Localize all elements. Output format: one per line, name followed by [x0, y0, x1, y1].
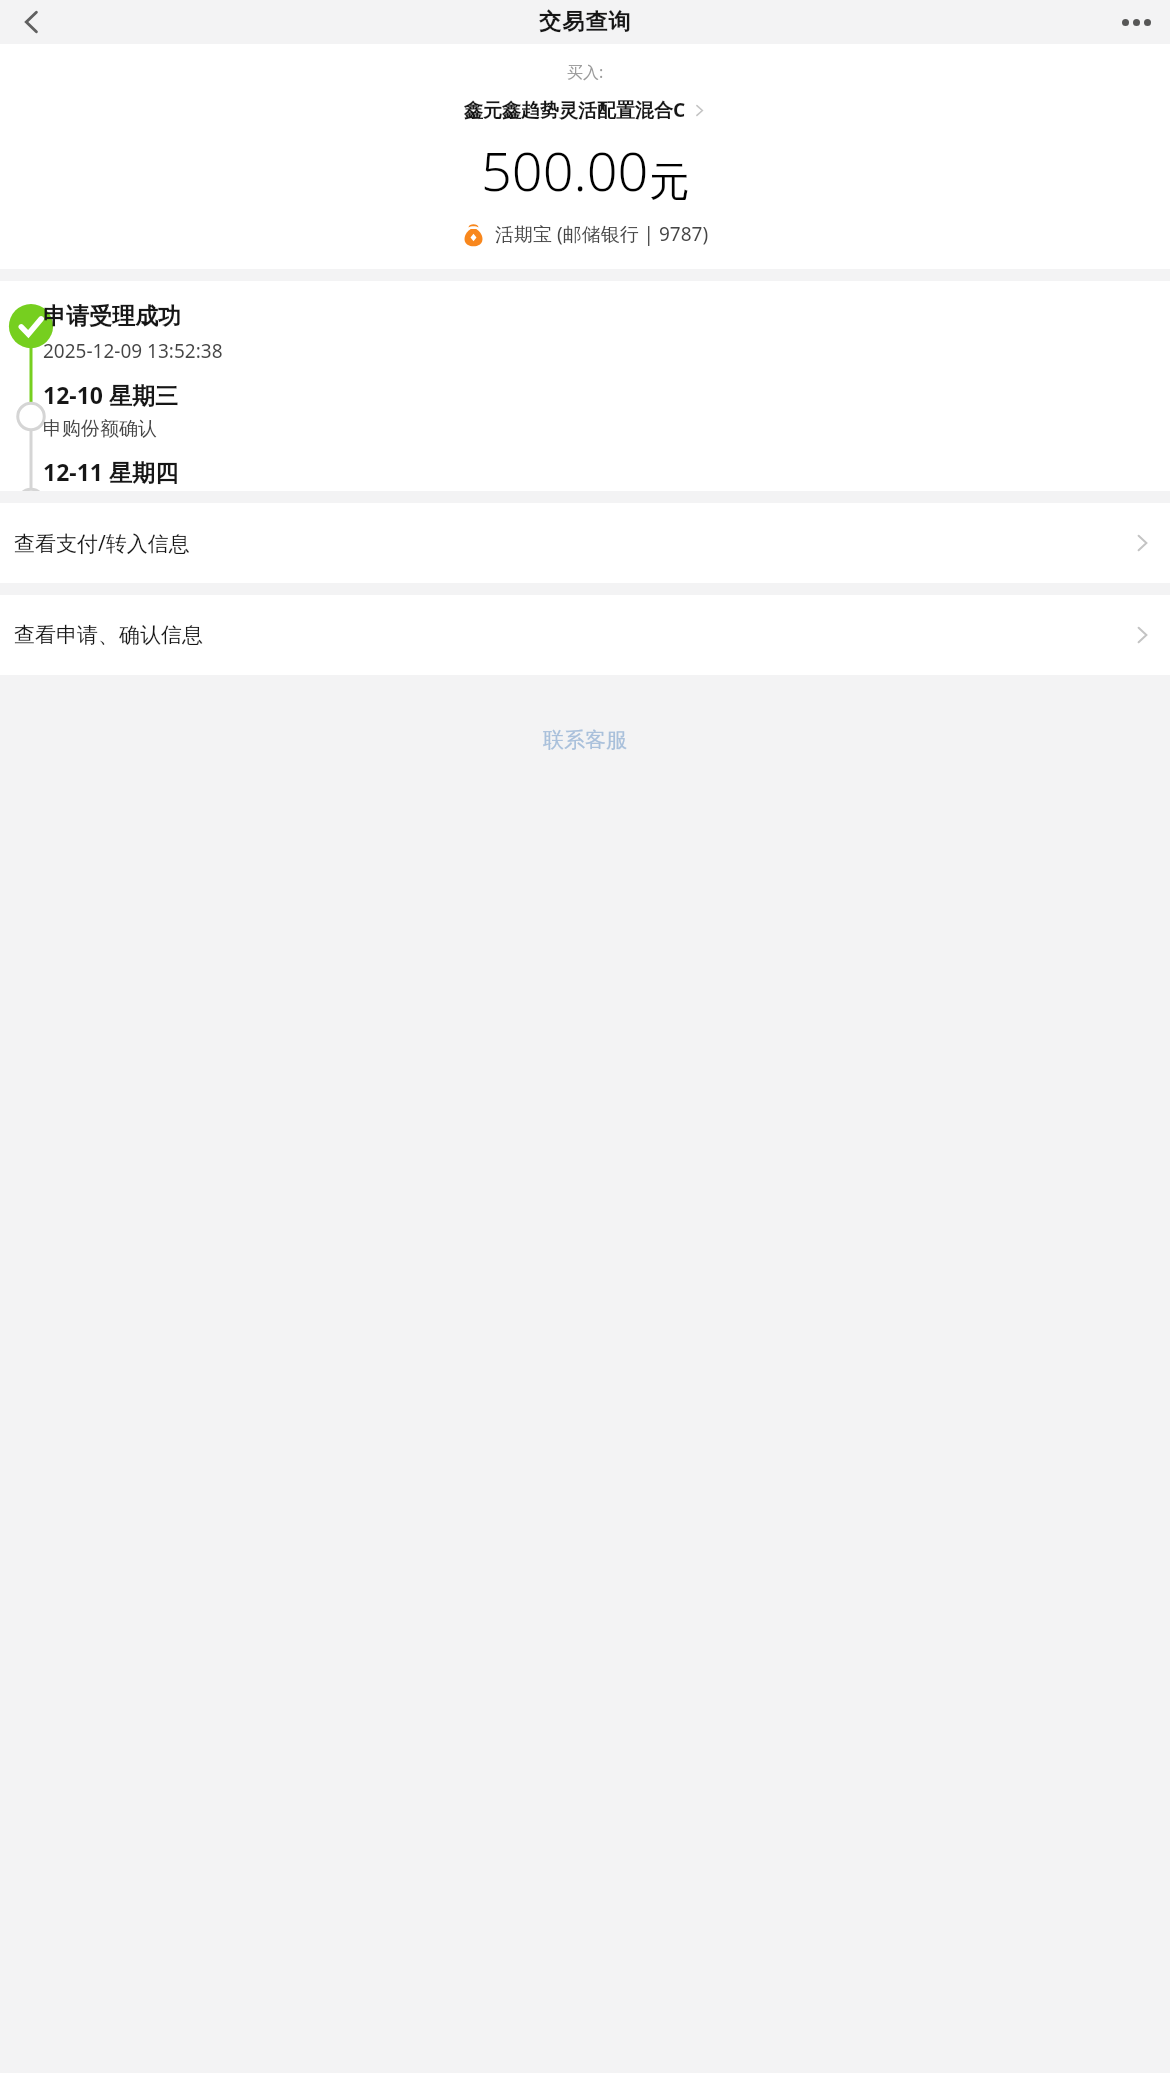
- button[interactable]: 联系客服: [0, 723, 1170, 757]
- staticText: 申请受理成功: [43, 302, 181, 331]
- button[interactable]: 查看申请、确认信息: [0, 595, 1170, 675]
- staticText: 活期宝 (邮储银行 | 9787): [495, 221, 709, 247]
- staticText: 元: [649, 156, 689, 206]
- staticText: 500.00: [481, 133, 649, 207]
- staticText: 2025-12-09 13:52:38: [43, 338, 223, 364]
- button[interactable]: More options: [1110, 0, 1162, 44]
- staticText: 申购份额确认: [43, 417, 157, 441]
- staticText: 12-10 星期三: [43, 379, 178, 410]
- staticText: 买入:: [567, 61, 604, 83]
- staticText: 联系客服: [543, 727, 627, 753]
- button[interactable]: 鑫元鑫趋势灵活配置混合C: [456, 95, 714, 125]
- staticText: 查看支付/转入信息: [14, 529, 1132, 558]
- staticText: 鑫元鑫趋势灵活配置混合C: [464, 97, 686, 123]
- staticText: 12-11 星期四: [43, 456, 178, 487]
- staticText: 交易查询: [539, 8, 632, 36]
- button[interactable]: Back: [6, 0, 58, 44]
- button[interactable]: 查看支付/转入信息: [0, 503, 1170, 583]
- staticText: 查看申请、确认信息: [14, 622, 1132, 648]
